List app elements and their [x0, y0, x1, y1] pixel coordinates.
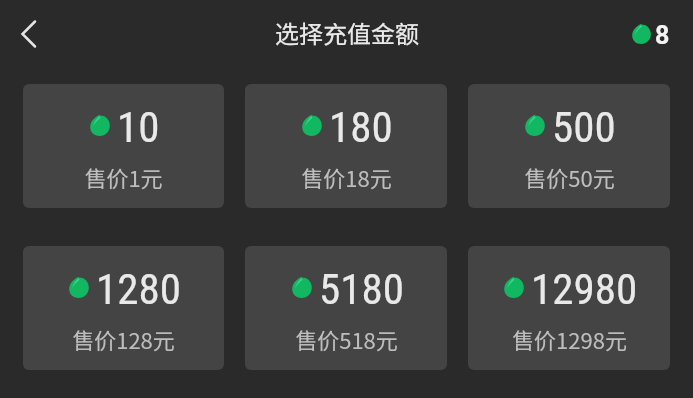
button[interactable]: 180	[245, 84, 447, 208]
staticText: 12980	[531, 264, 638, 314]
staticText: 8	[655, 21, 670, 50]
staticText: 10	[117, 102, 160, 152]
button[interactable]: 余额 8	[632, 21, 670, 50]
button[interactable]: 5180	[245, 246, 447, 370]
staticText: 500	[552, 102, 616, 152]
button[interactable]: 10	[23, 84, 224, 208]
button[interactable]: 12980	[468, 246, 670, 370]
staticText: 售价1元	[84, 161, 163, 193]
staticText: 售价1298元	[512, 323, 627, 355]
button[interactable]: Back	[6, 12, 50, 56]
staticText: 售价50元	[524, 161, 615, 193]
button[interactable]: 1280	[23, 246, 224, 370]
button[interactable]: 500	[468, 84, 670, 208]
staticText: 售价18元	[301, 161, 392, 193]
staticText: 1280	[96, 264, 181, 314]
staticText: 180	[329, 102, 393, 152]
staticText: 售价128元	[72, 323, 175, 355]
staticText: 5180	[319, 264, 404, 314]
staticText: 选择充值金额	[275, 15, 419, 50]
staticText: 售价518元	[295, 323, 398, 355]
